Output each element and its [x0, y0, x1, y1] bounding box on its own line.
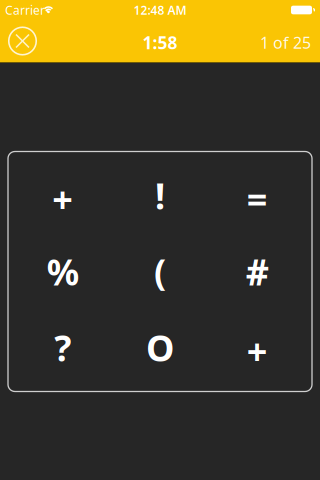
- staticText: 1:58: [142, 31, 177, 54]
- button[interactable]: %: [14, 233, 111, 309]
- staticText: O: [146, 324, 174, 371]
- staticText: (: [154, 248, 166, 295]
- button[interactable]: +: [209, 309, 306, 385]
- button[interactable]: (: [111, 233, 209, 309]
- staticText: +: [52, 175, 73, 223]
- staticText: =: [247, 175, 268, 222]
- staticText: %: [47, 248, 79, 295]
- staticText: Carrier: [5, 2, 45, 18]
- button[interactable]: O: [111, 309, 209, 385]
- staticText: ?: [54, 324, 71, 371]
- button[interactable]: =: [209, 157, 306, 233]
- staticText: !: [155, 172, 165, 219]
- button[interactable]: ?: [14, 309, 111, 385]
- button[interactable]: +: [14, 157, 111, 233]
- button[interactable]: !: [111, 157, 209, 233]
- staticText: 12:48 AM: [133, 2, 186, 18]
- button[interactable]: Close: [4, 22, 41, 59]
- staticText: 1 of 25: [260, 32, 311, 53]
- staticText: +: [247, 327, 268, 375]
- staticText: #: [246, 248, 269, 295]
- button[interactable]: #: [209, 233, 306, 309]
